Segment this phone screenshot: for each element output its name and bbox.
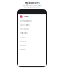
staticText: Payment Methods bbox=[20, 20, 32, 22]
staticText: Manage your subscription, bbox=[22, 4, 41, 6]
button[interactable]: Security bbox=[18, 39, 46, 43]
button[interactable]: Privacy bbox=[18, 35, 46, 39]
staticText: payments and privacy. bbox=[24, 6, 40, 8]
button[interactable]: Subscriptions bbox=[18, 23, 46, 27]
staticText: Sign Out bbox=[20, 48, 25, 50]
button[interactable]: Notifications bbox=[18, 31, 46, 35]
button[interactable]: Devices bbox=[18, 43, 46, 47]
button[interactable]: Payment Methods bbox=[18, 19, 46, 23]
button[interactable]: Apple ID bbox=[18, 14, 46, 19]
staticText: Apple ID bbox=[23, 16, 28, 17]
staticText: Devices bbox=[20, 44, 26, 46]
staticText: Security bbox=[20, 40, 26, 42]
staticText: My Account bbox=[24, 1, 39, 4]
button[interactable]: Sign Out bbox=[18, 47, 46, 51]
button[interactable]: Purchases bbox=[18, 27, 46, 31]
staticText: Notifications bbox=[20, 32, 28, 34]
staticText: Subscriptions bbox=[20, 24, 30, 26]
staticText: Privacy bbox=[20, 36, 26, 38]
staticText: Purchases bbox=[20, 28, 29, 30]
